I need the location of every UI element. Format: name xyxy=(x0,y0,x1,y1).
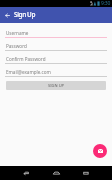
button[interactable]: SIGN UP xyxy=(6,81,106,90)
button[interactable]: Back xyxy=(11,166,41,180)
button[interactable]: Username xyxy=(5,25,107,38)
staticText: Confirm Password xyxy=(6,56,46,62)
button[interactable]: Home xyxy=(41,166,71,180)
staticText: Email@example.com xyxy=(6,69,51,75)
button[interactable]: Confirm Password xyxy=(5,51,107,64)
button[interactable]: Recent apps xyxy=(71,166,101,180)
button[interactable]: Navigate up xyxy=(0,7,14,23)
button[interactable]: Password xyxy=(5,38,107,51)
staticText: SIGN UP xyxy=(48,83,65,88)
staticText: Password xyxy=(6,43,27,49)
button[interactable]: Email@example.com xyxy=(5,64,107,77)
button[interactable]: Send email xyxy=(93,144,107,158)
staticText: Username xyxy=(6,30,29,36)
staticText: 9:30 xyxy=(101,0,111,7)
staticText: Sign Up xyxy=(14,10,36,19)
